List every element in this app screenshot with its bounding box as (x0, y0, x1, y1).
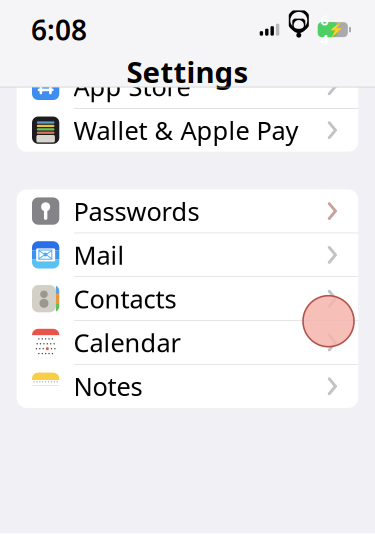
staticText: Privacy & Security (74, 0, 286, 22)
button[interactable]: Notes (17, 365, 358, 408)
staticText: App Store (74, 70, 191, 103)
staticText: ✉ (37, 243, 54, 266)
button[interactable]: Contacts (17, 277, 358, 321)
button[interactable]: ✉ (17, 233, 358, 277)
staticText: ⚡ (328, 22, 345, 37)
button[interactable]: Passwords (17, 189, 358, 233)
staticText: Calendar (74, 326, 181, 359)
button[interactable]: App Store (17, 65, 358, 108)
staticText: Contacts (74, 282, 177, 315)
staticText: 6:08 (31, 11, 87, 48)
button[interactable]: Privacy & Security (17, 0, 358, 27)
staticText: Notes (74, 369, 143, 403)
staticText: Passwords (74, 194, 200, 228)
staticText: Wallet & Apple Pay (74, 113, 299, 147)
button[interactable]: Calendar (17, 321, 358, 365)
staticText: 64 (320, 10, 328, 49)
button[interactable]: Wallet & Apple Pay (17, 108, 358, 152)
staticText: Mail (74, 238, 125, 272)
staticText: Settings (126, 52, 248, 91)
